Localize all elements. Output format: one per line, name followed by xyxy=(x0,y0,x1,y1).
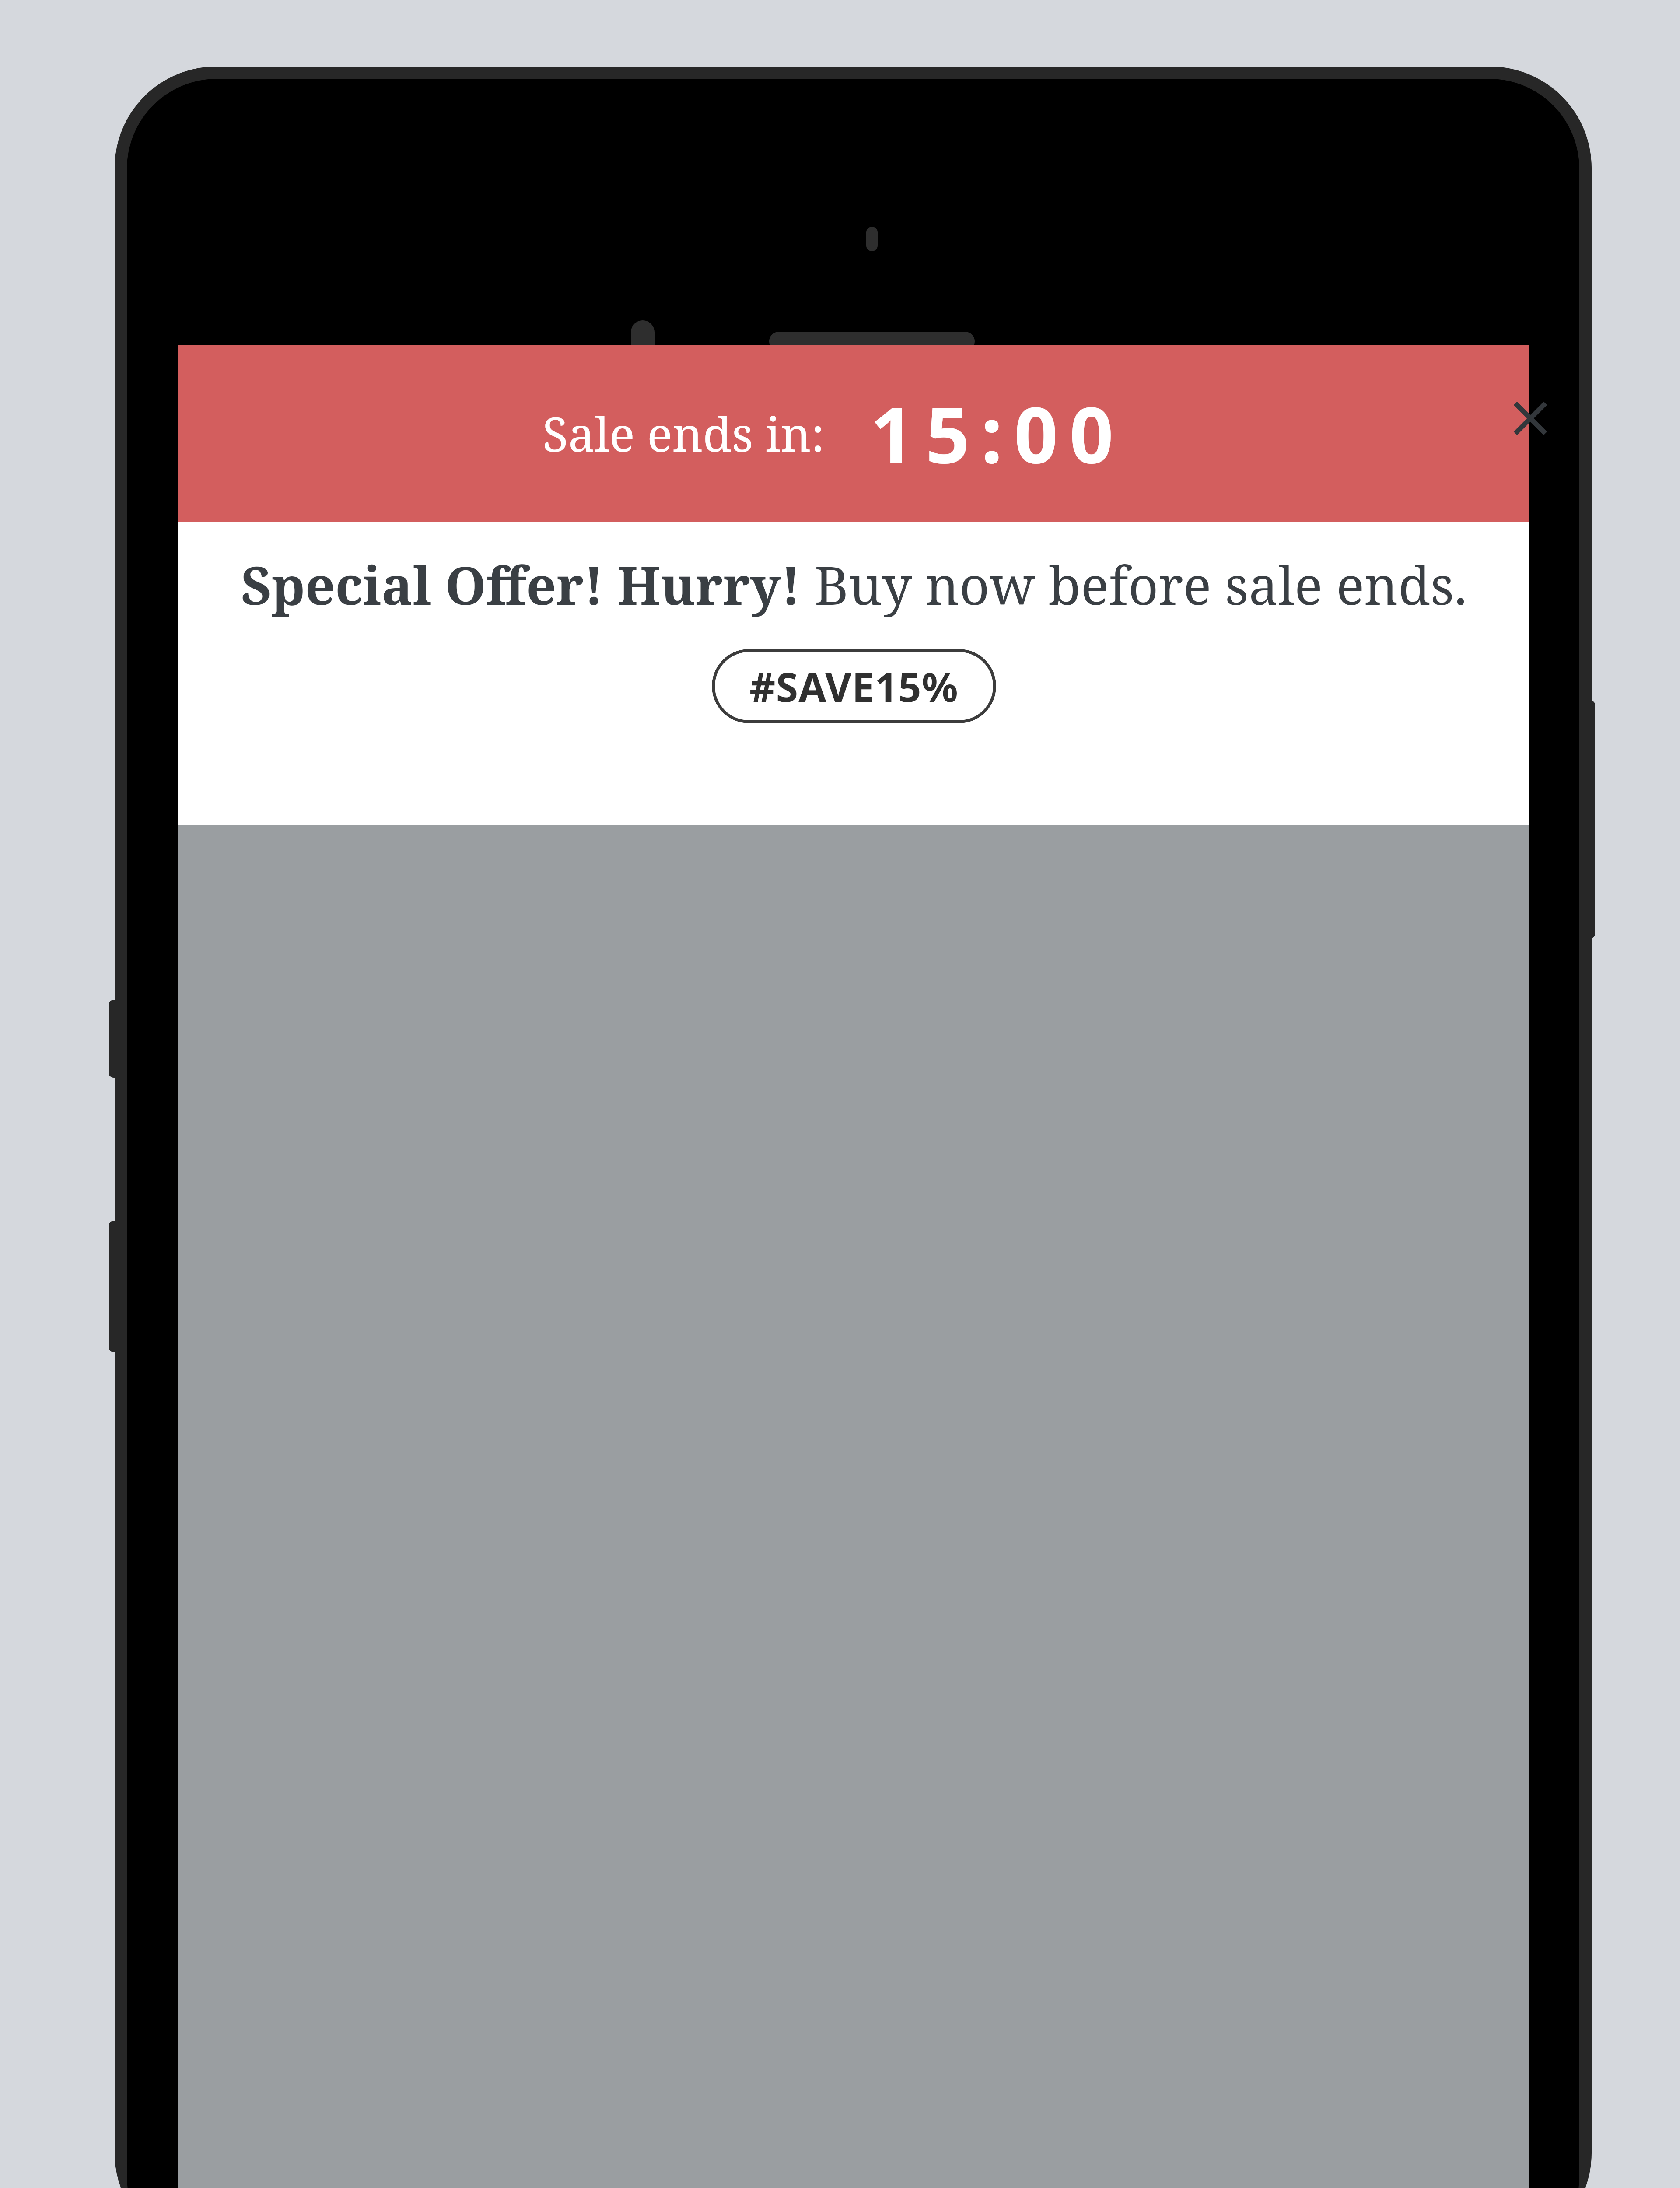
staticText: Sale ends in: xyxy=(542,401,825,466)
button[interactable]: #SAVE15% xyxy=(712,649,996,723)
staticText: Special Offer! Hurry! Buy now before sal… xyxy=(241,549,1467,620)
staticText: #SAVE15% xyxy=(749,659,959,714)
staticText: 15:00 xyxy=(870,381,1125,486)
button[interactable]: Close xyxy=(1487,375,1574,462)
